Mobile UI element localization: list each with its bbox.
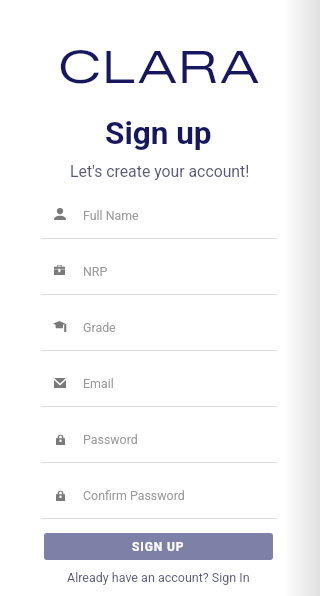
button[interactable]: Email [41,350,277,408]
staticText: NRP [83,264,108,279]
staticText: Full Name [83,208,139,223]
staticText: Confirm Password [83,488,185,503]
staticText: Already have an account? Sign In [67,570,250,585]
button[interactable]: Already have an account? Sign In [67,570,250,585]
staticText: SIGN UP [132,540,185,554]
staticText: CLARA [59,40,262,95]
button[interactable]: SIGN UP [44,533,273,560]
staticText: Password [83,432,138,447]
staticText: Email [83,376,114,391]
button[interactable]: Full Name [41,196,277,240]
button[interactable]: Confirm Password [41,462,277,520]
staticText: Sign up [105,115,212,152]
button[interactable]: Grade [41,294,277,352]
staticText: Let's create your account! [70,162,250,181]
button[interactable]: NRP [41,238,277,296]
button[interactable]: Password [41,406,277,464]
staticText: Grade [83,320,116,335]
